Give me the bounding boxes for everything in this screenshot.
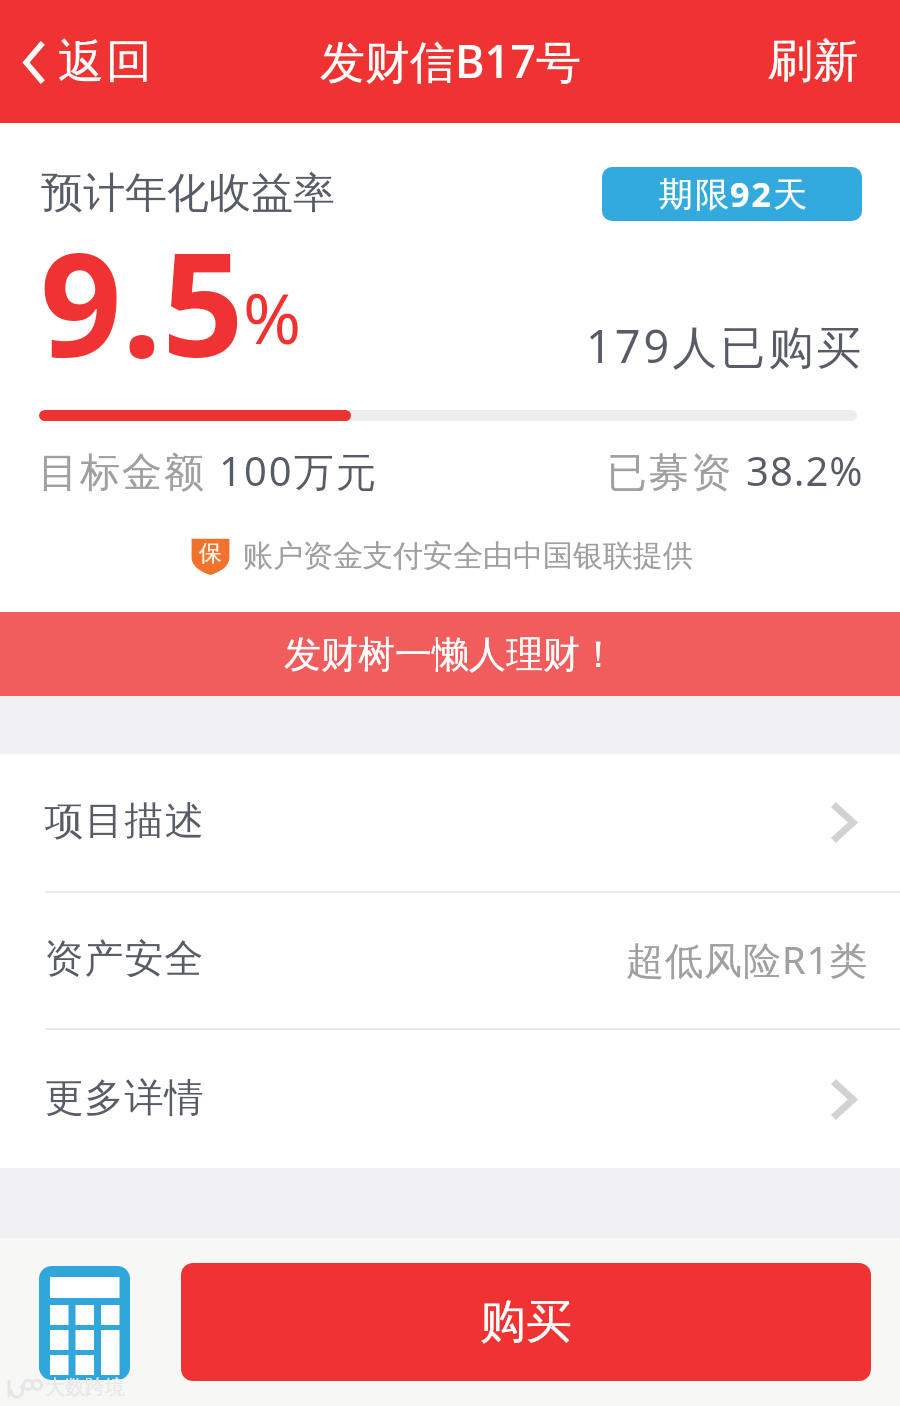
staticText: 保	[199, 539, 222, 568]
staticText: 天	[773, 173, 807, 216]
staticText: 项目描述	[44, 796, 204, 845]
button[interactable]: 发财树一懒人理财！	[0, 612, 900, 696]
button[interactable]: 项目描述	[0, 754, 900, 891]
staticText: 发财信B17号	[320, 30, 581, 91]
staticText: 资产安全	[44, 934, 204, 983]
button[interactable]: 刷新	[737, 17, 900, 106]
staticText: 发财树一懒人理财！	[284, 631, 617, 678]
button[interactable]: 期限	[602, 167, 862, 221]
button[interactable]: 资产安全	[0, 893, 900, 1028]
staticText: 100万元	[219, 443, 378, 498]
button[interactable]: 购买	[181, 1263, 871, 1381]
staticText: 购买	[480, 1293, 572, 1351]
button[interactable]: 计算器	[39, 1266, 130, 1380]
staticText: 预计年化收益率	[41, 167, 335, 220]
staticText: 超低风险R1类	[626, 933, 869, 985]
staticText: 刷新	[767, 33, 859, 90]
button[interactable]: 返回	[0, 17, 171, 107]
staticText: 92	[730, 171, 773, 217]
staticText: 38.2%	[746, 443, 864, 497]
staticText: %	[243, 269, 302, 364]
staticText: 大数跨境	[45, 1375, 125, 1400]
staticText: 已募资	[607, 443, 746, 498]
staticText: 返回	[57, 33, 153, 91]
staticText: 期限	[658, 173, 730, 216]
staticText: 9.5	[40, 204, 244, 399]
staticText: 目标金额	[38, 443, 219, 498]
staticText: 更多详情	[44, 1073, 204, 1122]
button[interactable]: 更多详情	[0, 1030, 900, 1168]
staticText: 账户资金支付安全由中国银联提供	[243, 537, 693, 575]
staticText: 179人已购买	[586, 315, 865, 376]
